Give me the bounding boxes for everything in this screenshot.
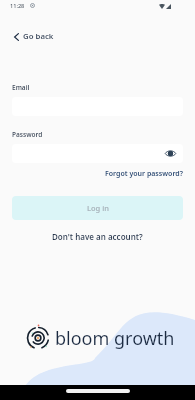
button[interactable]: Show password	[12, 144, 183, 163]
button[interactable]: Forgot your password?	[105, 169, 183, 179]
staticText: Password	[12, 130, 43, 139]
button[interactable]: Go back	[9, 27, 59, 46]
staticText: bloom growth	[55, 326, 175, 351]
staticText: 11:28	[10, 2, 25, 10]
button[interactable]: Don't have an account?	[52, 231, 143, 242]
button[interactable]: Log in	[12, 196, 183, 220]
staticText: Log in	[87, 203, 109, 213]
staticText: Go back	[23, 31, 54, 42]
button[interactable]: Show password	[164, 147, 177, 160]
staticText: Email	[12, 83, 30, 92]
